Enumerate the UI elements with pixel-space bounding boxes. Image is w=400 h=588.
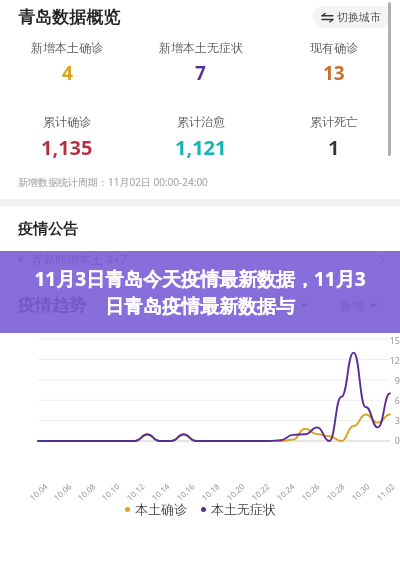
staticText: 疫情公告 <box>18 220 78 239</box>
staticText: 新增数据统计周期：11月02日 00:00-24:00 <box>18 175 208 189</box>
staticText: 0 <box>368 434 400 446</box>
staticText: 10.12 <box>124 480 147 503</box>
staticText: 3 <box>368 414 400 426</box>
staticText: 现有确诊 <box>310 40 358 55</box>
button[interactable]: 切换城市 <box>313 6 390 28</box>
staticText: 1,121 <box>175 134 227 161</box>
staticText: 9 <box>368 374 400 386</box>
staticText: 新增本土无症状 <box>159 40 243 55</box>
staticText: 本土确诊 <box>135 501 187 517</box>
button[interactable]: 新增本土确诊 <box>0 40 134 86</box>
staticText: 累计治愈 <box>177 114 225 129</box>
staticText: 10.16 <box>174 480 197 503</box>
staticText: 10.30 <box>349 480 372 503</box>
staticText: 疫情趋势 <box>18 295 86 316</box>
staticText: 10.04 <box>27 480 50 503</box>
button[interactable]: 30 天 <box>255 291 319 319</box>
staticText: 11月3日青岛今天疫情最新数据，11月3日青岛疫情最新数据与 <box>26 266 374 319</box>
staticText: 10.24 <box>274 480 297 503</box>
staticText: 30 天 <box>266 297 295 313</box>
staticText: 10.18 <box>199 480 222 503</box>
button[interactable]: 累计死亡 <box>267 114 400 161</box>
other: 切换城市 <box>322 12 333 23</box>
staticText: 10.20 <box>224 480 247 503</box>
staticText: 7 <box>195 60 206 86</box>
button[interactable]: 累计治愈 <box>134 114 267 161</box>
staticText: 青岛数据概览 <box>18 7 120 28</box>
staticText: 11.02 <box>374 480 397 503</box>
staticText: 累计确诊 <box>43 114 91 129</box>
button[interactable]: 累计确诊 <box>0 114 134 161</box>
staticText: 10.06 <box>51 480 74 503</box>
button[interactable]: 新增本土无症状 <box>134 40 267 86</box>
staticText: 新增本土确诊 <box>31 40 103 55</box>
staticText: 新增 <box>340 298 364 313</box>
staticText: 10.26 <box>299 480 322 503</box>
staticText: 10.10 <box>99 480 122 503</box>
staticText: 4 <box>62 60 73 86</box>
staticText: 15 <box>368 334 400 346</box>
staticText: 青岛昨增本土 4+7 <box>31 251 127 267</box>
staticText: 6 <box>368 394 400 406</box>
staticText: 13 <box>323 60 345 86</box>
staticText: 累计死亡 <box>310 114 358 129</box>
staticText: 1,135 <box>41 134 93 161</box>
staticText: 10.08 <box>75 480 98 503</box>
button[interactable]: 现有确诊 <box>267 40 400 86</box>
staticText: 本土无症状 <box>211 501 276 517</box>
staticText: 12 <box>368 354 400 366</box>
staticText: 10.22 <box>249 480 272 503</box>
staticText: 切换城市 <box>337 10 381 24</box>
staticText: 1 <box>328 134 340 161</box>
staticText: 10.28 <box>324 480 347 503</box>
button[interactable]: 新增 <box>329 292 388 319</box>
staticText: 10.14 <box>149 480 172 503</box>
